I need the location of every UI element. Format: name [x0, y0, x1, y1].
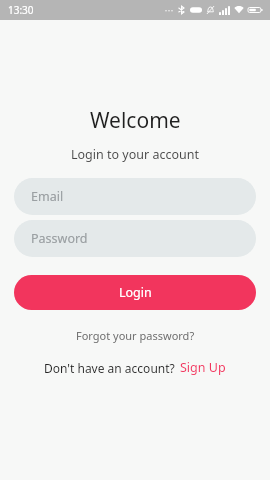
button[interactable]: Forgot your password? — [70, 324, 201, 347]
staticText: Forgot your password? — [76, 328, 195, 343]
button[interactable]: Password — [14, 220, 256, 257]
staticText: 13:30 — [8, 3, 34, 17]
button[interactable]: Sign Up — [180, 359, 226, 376]
staticText: Email — [31, 188, 64, 205]
other: More — [164, 5, 174, 15]
other: Wi-Fi — [234, 5, 244, 15]
staticText: Password — [31, 230, 88, 247]
other: Bluetooth — [178, 5, 186, 15]
other: Battery — [248, 5, 263, 15]
staticText: Welcome — [90, 106, 181, 135]
other: VPN — [190, 5, 202, 15]
staticText: Login to your account — [71, 146, 199, 163]
button[interactable]: Email — [14, 178, 256, 215]
staticText: Don't have an account? — [44, 360, 175, 376]
staticText: Login — [119, 284, 152, 301]
other: Signal — [219, 5, 230, 15]
other: Silent — [206, 5, 215, 15]
staticText: Sign Up — [180, 359, 226, 376]
button[interactable]: Login — [14, 275, 256, 310]
